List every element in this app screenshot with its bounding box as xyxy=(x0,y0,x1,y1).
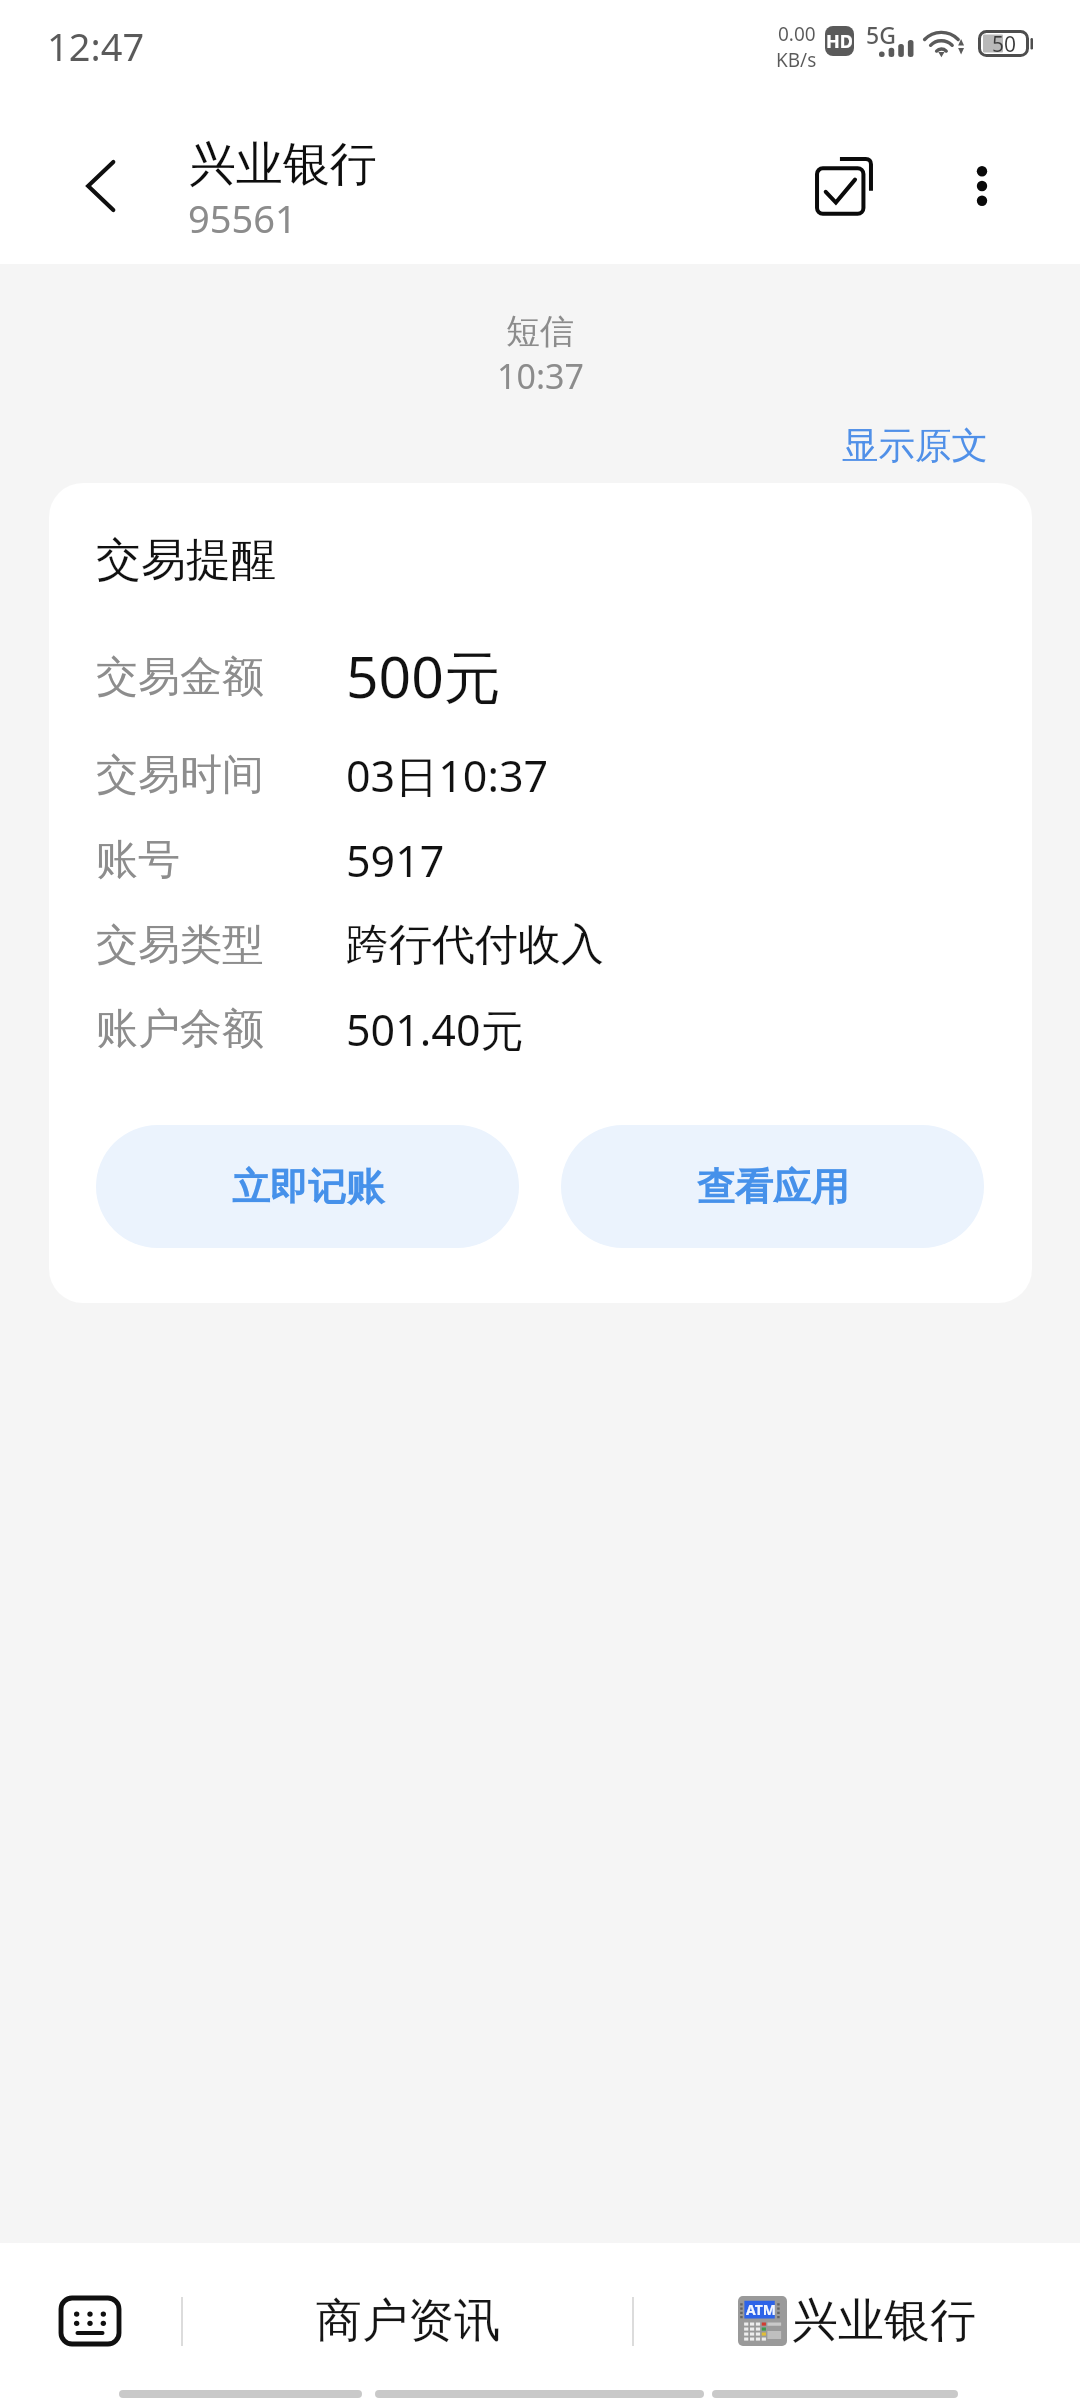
staticText: HD xyxy=(826,29,853,54)
staticText: 交易时间 xyxy=(96,749,264,802)
staticText: 兴业银行 xyxy=(189,135,377,194)
staticText: 50 xyxy=(992,30,1017,57)
staticText: 95561 xyxy=(188,192,297,244)
staticText: 查看应用 xyxy=(697,1163,849,1211)
staticText: 5G xyxy=(866,19,896,50)
button[interactable]: 显示原文 xyxy=(836,417,994,475)
staticText: 显示原文 xyxy=(842,423,988,469)
staticText: 交易金额 xyxy=(96,651,264,704)
button[interactable]: ATM xyxy=(634,2243,1080,2368)
staticText: 交易类型 xyxy=(96,919,264,972)
button[interactable]: 交易提醒 xyxy=(49,483,1032,1303)
staticText: 501.40元 xyxy=(346,1000,524,1059)
staticText: ATM xyxy=(746,2300,776,2319)
button[interactable]: Back xyxy=(51,136,151,236)
staticText: 跨行代付收入 xyxy=(346,918,604,972)
staticText: 立即记账 xyxy=(232,1163,384,1211)
staticText: 500元 xyxy=(346,637,501,715)
staticText: 12:47 xyxy=(47,20,145,72)
staticText: 03日10:37 xyxy=(346,746,549,805)
staticText: 账号 xyxy=(96,834,180,887)
staticText: 10:37 xyxy=(497,353,584,399)
staticText: 交易提醒 xyxy=(96,532,276,589)
staticText: 5917 xyxy=(346,831,445,890)
staticText: 账户余额 xyxy=(96,1003,264,1056)
staticText: 0.00 xyxy=(778,21,816,47)
staticText: 商户资讯 xyxy=(316,2292,500,2350)
button[interactable]: 立即记账 xyxy=(96,1125,519,1248)
staticText: 短信 xyxy=(506,310,574,353)
button[interactable]: 商户资讯 xyxy=(183,2243,632,2368)
staticText: 兴业银行 xyxy=(792,2292,976,2350)
button[interactable]: Keyboard xyxy=(0,2243,181,2368)
button[interactable]: 查看应用 xyxy=(561,1125,984,1248)
staticText: KB/s xyxy=(776,47,817,73)
button[interactable]: More options xyxy=(930,134,1034,238)
button[interactable]: Select messages xyxy=(792,134,896,238)
